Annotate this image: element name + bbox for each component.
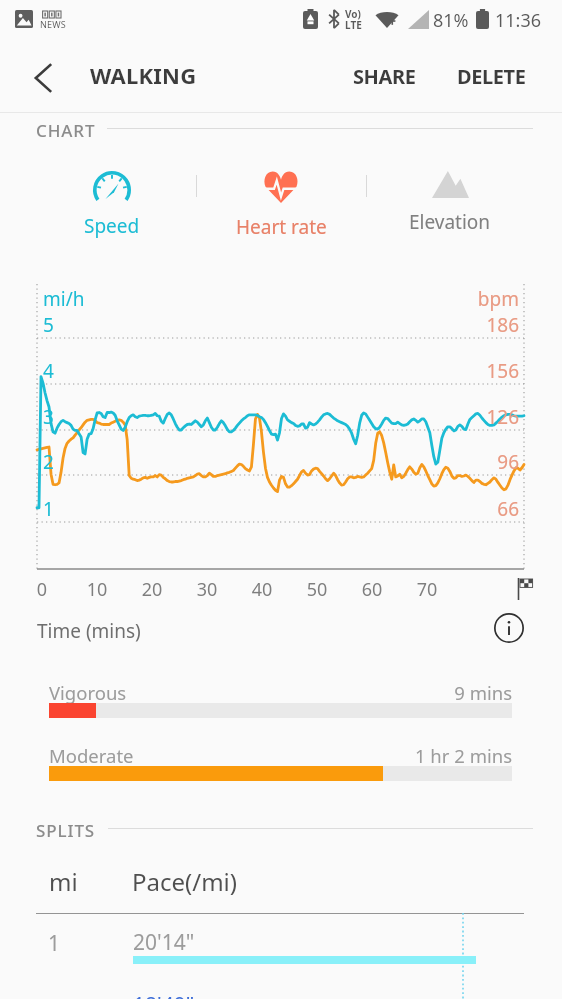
staticText: 20 <box>127 577 177 602</box>
staticText: 66 <box>440 496 519 522</box>
staticText: 186 <box>440 312 519 338</box>
staticText: 156 <box>440 358 519 384</box>
button[interactable]: Speed <box>27 160 197 250</box>
button[interactable]: Back <box>20 55 66 101</box>
staticText: 2 <box>43 449 54 475</box>
staticText: bpm <box>440 286 519 312</box>
staticText: 96 <box>440 449 519 475</box>
staticText: Pace(/mi) <box>132 865 237 898</box>
staticText: 9 mins <box>300 680 512 705</box>
staticText: Moderate <box>49 743 134 768</box>
staticText: 5 <box>43 312 54 338</box>
staticText: CHART <box>36 119 96 142</box>
staticText: LTE <box>345 18 362 32</box>
staticText: Vo) <box>345 7 361 21</box>
staticText: mi <box>49 865 78 898</box>
staticText: NEWS <box>40 18 66 30</box>
button[interactable]: Elevation <box>365 160 535 250</box>
button[interactable]: DELETE <box>443 49 540 104</box>
staticText: Speed <box>84 213 140 239</box>
button[interactable]: Information <box>489 608 529 648</box>
staticText: 81% <box>433 8 469 33</box>
staticText: SHARE <box>353 63 416 90</box>
staticText: DELETE <box>457 63 526 90</box>
staticText: 0 <box>17 577 67 602</box>
staticText: 1 <box>43 496 54 522</box>
staticText: Vigorous <box>49 680 127 705</box>
staticText: SPLITS <box>36 819 96 842</box>
staticText: 70 <box>402 577 452 602</box>
staticText: 20'14" <box>133 928 195 957</box>
staticText: 40 <box>237 577 287 602</box>
staticText: 30 <box>182 577 232 602</box>
staticText: 126 <box>440 404 519 430</box>
staticText: 10 <box>72 577 122 602</box>
staticText: WALKING <box>90 60 197 90</box>
staticText: mi/h <box>43 286 85 312</box>
staticText: 4 <box>43 358 54 384</box>
button[interactable]: Heart rate <box>196 160 366 250</box>
staticText: 11:36 <box>495 8 542 33</box>
button[interactable]: SHARE <box>339 49 430 104</box>
staticText: Time (mins) <box>37 618 141 644</box>
staticText: 3 <box>43 404 54 430</box>
staticText: 1 <box>48 929 61 958</box>
staticText: Elevation <box>409 209 491 235</box>
staticText: 1 hr 2 mins <box>300 743 512 768</box>
staticText: 60 <box>347 577 397 602</box>
staticText: 18'49" <box>133 991 195 999</box>
staticText: Heart rate <box>236 214 327 240</box>
staticText: 50 <box>292 577 342 602</box>
